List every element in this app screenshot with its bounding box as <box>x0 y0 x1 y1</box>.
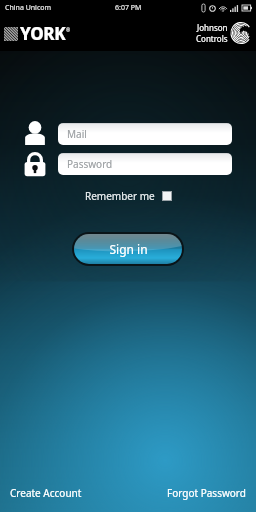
button[interactable]: Create Account <box>0 482 88 504</box>
button[interactable]: Remember me <box>79 186 178 206</box>
button[interactable]: Forgot Password <box>161 482 256 504</box>
staticText: 6:07 PM <box>115 3 142 13</box>
staticText: Forgot Password <box>167 486 246 500</box>
button[interactable]: Mail <box>58 123 232 145</box>
staticText: Create Account <box>10 486 82 500</box>
staticText: Remember me <box>85 189 155 203</box>
staticText: Sign in <box>109 241 148 257</box>
button[interactable]: Sign in <box>72 232 184 266</box>
staticText: Controls <box>196 33 228 44</box>
staticText: China Unicom <box>5 3 52 13</box>
button[interactable]: Password <box>58 153 232 175</box>
staticText: YORK <box>20 22 66 45</box>
staticText: ® <box>66 27 71 34</box>
staticText: Mail <box>67 127 87 141</box>
staticText: Password <box>67 157 113 171</box>
staticText: Johnson <box>197 22 228 33</box>
